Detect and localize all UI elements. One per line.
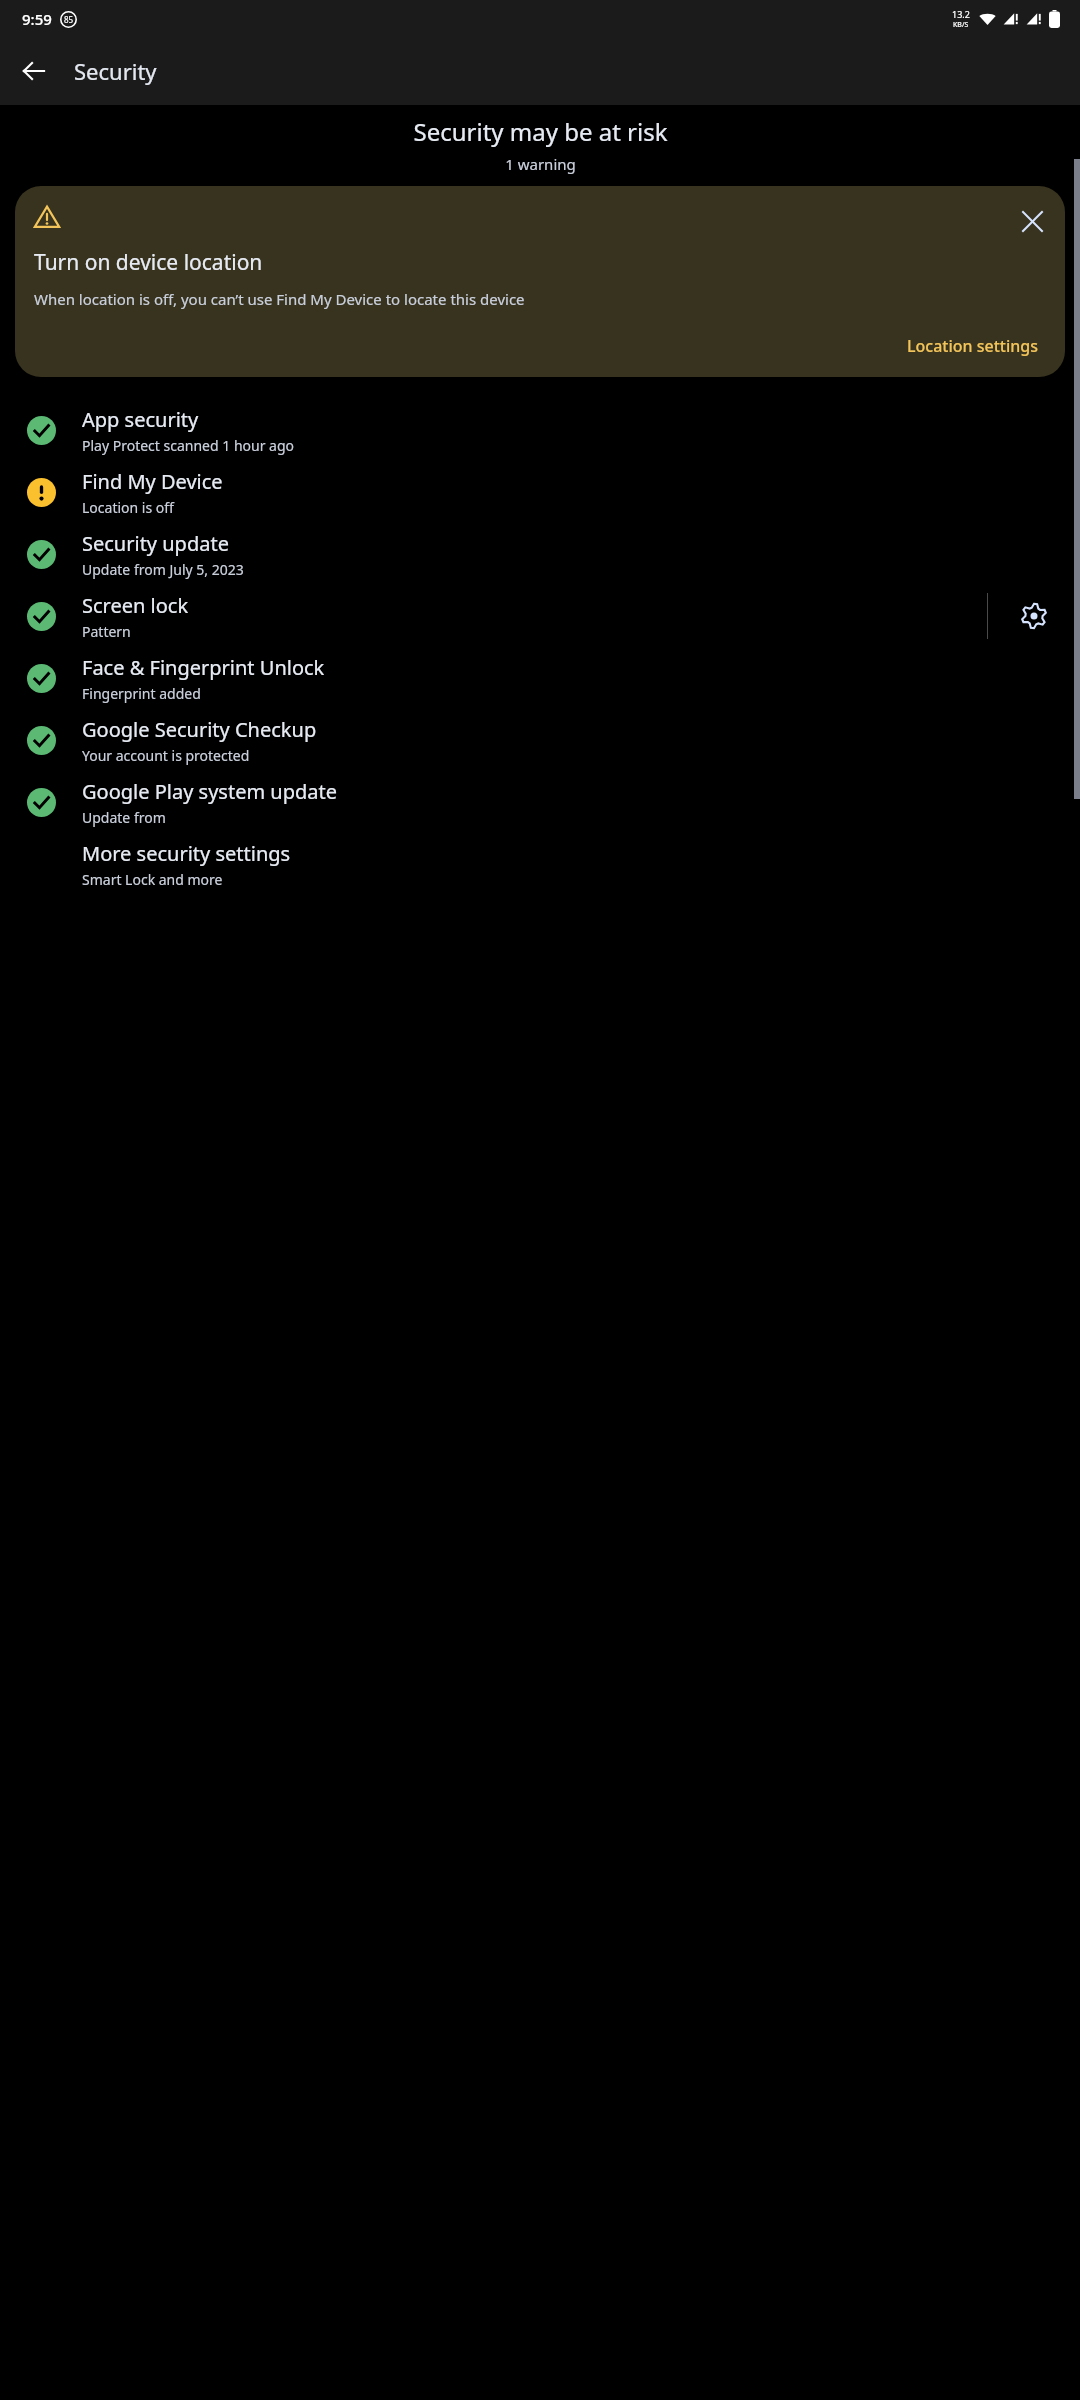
staticText: Security update — [82, 530, 229, 557]
button[interactable]: Screen lock settings — [988, 585, 1080, 647]
staticText: Your account is protected — [82, 746, 250, 765]
staticText: Location settings — [907, 335, 1039, 357]
staticText: Location is off — [82, 498, 174, 517]
staticText: Security may be at risk — [413, 115, 668, 148]
button[interactable]: Back — [10, 47, 58, 95]
button[interactable]: Dismiss — [15, 186, 1065, 377]
staticText: Turn on device location — [34, 248, 263, 277]
staticText: 1 warning — [505, 154, 576, 174]
button[interactable]: More security settings — [0, 833, 1080, 895]
staticText: Play Protect scanned 1 hour ago — [82, 436, 295, 455]
staticText: Find My Device — [82, 468, 223, 495]
button[interactable]: Find My Device — [0, 461, 1080, 523]
staticText: More security settings — [82, 840, 291, 867]
staticText: Smart Lock and more — [82, 870, 223, 889]
staticText: Fingerprint added — [82, 684, 201, 703]
staticText: 85 — [64, 14, 74, 25]
button[interactable]: Google Security Checkup — [0, 709, 1080, 771]
staticText: 13.2 — [952, 8, 970, 20]
staticText: Pattern — [82, 622, 131, 641]
staticText: When location is off, you can’t use Find… — [34, 289, 525, 309]
button[interactable]: App security — [0, 399, 1080, 461]
button[interactable]: Face & Fingerprint Unlock — [0, 647, 1080, 709]
staticText: App security — [82, 406, 199, 433]
staticText: KB/S — [953, 20, 969, 30]
staticText: Update from — [82, 808, 166, 827]
staticText: Face & Fingerprint Unlock — [82, 654, 325, 681]
staticText: 9:59 — [22, 9, 52, 29]
button[interactable]: Google Play system update — [0, 771, 1080, 833]
staticText: Google Play system update — [82, 778, 338, 805]
button[interactable]: Location settings — [897, 329, 1049, 363]
button[interactable]: Security update — [0, 523, 1080, 585]
button[interactable]: Screen lock — [0, 585, 1080, 647]
staticText: Security — [74, 56, 157, 86]
staticText: Update from July 5, 2023 — [82, 560, 244, 579]
button[interactable]: Dismiss — [1015, 204, 1049, 238]
staticText: Google Security Checkup — [82, 716, 317, 743]
staticText: Screen lock — [82, 592, 189, 619]
